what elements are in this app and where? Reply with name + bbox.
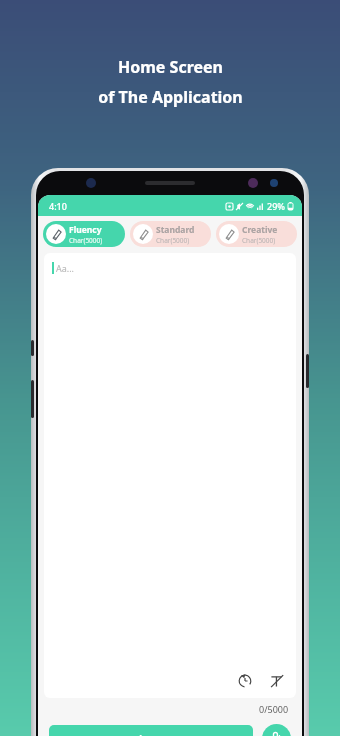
staticText: Char(5000) [69,236,103,245]
staticText: Paraphrase Now [112,732,190,736]
staticText: 4:10 [49,200,67,212]
button[interactable]: Paraphrase Now [49,725,253,736]
staticText: 29% [267,200,285,212]
button[interactable]: Fluency [43,221,125,247]
staticText: Aa... [56,262,75,274]
staticText: Char(5000) [242,236,276,245]
staticText: Fluency [69,224,102,236]
staticText: Standard [156,224,195,236]
button[interactable]: Standard [130,221,211,247]
button[interactable]: Creative [216,221,297,247]
staticText: Creative [242,224,278,236]
staticText: Home Screen [118,56,223,78]
button[interactable]: Clear formatting [268,672,286,690]
staticText: of The Application [98,86,243,108]
staticText: Char(5000) [156,236,190,245]
staticText: 0/5000 [259,703,289,715]
button[interactable]: Attach file [262,724,291,736]
button[interactable]: Aa... [44,253,296,698]
button[interactable]: History [236,672,254,690]
